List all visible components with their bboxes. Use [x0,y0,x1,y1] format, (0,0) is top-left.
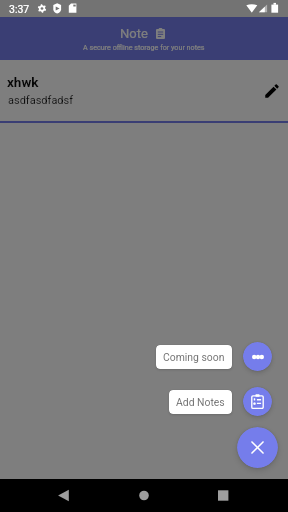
button[interactable]: xhwk [0,60,288,121]
staticText: 3:37 [9,3,30,15]
staticText: Coming soon [163,351,225,363]
button[interactable]: Add Notes [243,387,272,416]
button[interactable]: Add Notes [169,390,232,414]
staticText: asdfasdfadsf [8,94,74,107]
button[interactable]: Close [237,427,278,468]
button[interactable]: Coming soon [243,342,272,371]
staticText: A secure offline storage for your notes [83,43,205,51]
button[interactable]: Edit note [259,78,285,104]
staticText: xhwk [7,74,39,90]
staticText: Add Notes [176,396,225,408]
button[interactable]: Coming soon [156,345,232,369]
staticText: Note [120,26,148,41]
